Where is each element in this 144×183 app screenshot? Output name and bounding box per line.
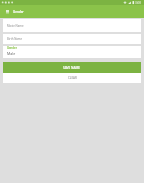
staticText: 3:08 (135, 1, 141, 5)
staticText: Male (7, 51, 16, 56)
button[interactable]: CLEAR (3, 73, 141, 83)
staticText: Movie Name (7, 24, 24, 28)
button[interactable]: Movie Name (3, 19, 141, 32)
button[interactable]: SAVE NAME (3, 62, 141, 73)
staticText: Gender (7, 46, 17, 50)
staticText: Gender (13, 10, 24, 14)
staticText: Birth Name (7, 37, 23, 41)
staticText: SAVE NAME (63, 66, 81, 70)
button[interactable]: Birth Name (3, 34, 141, 44)
button[interactable]: Gender (3, 46, 141, 58)
staticText: CLEAR (68, 76, 77, 80)
button[interactable]: Open navigation menu (4, 7, 11, 16)
